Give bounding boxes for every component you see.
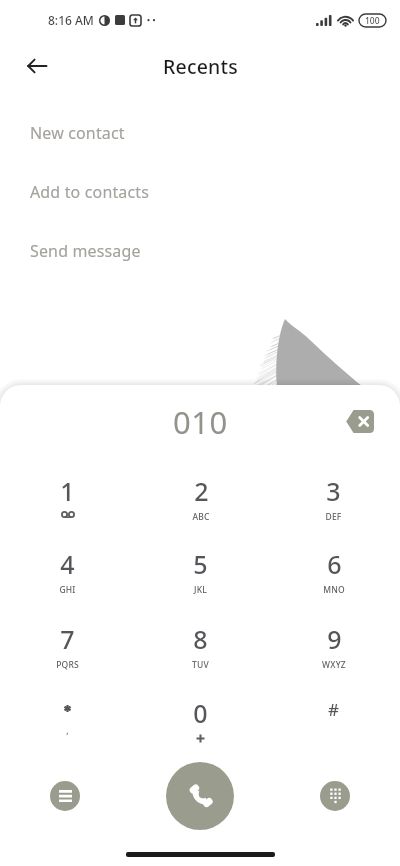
button[interactable]: 2 (134, 474, 267, 528)
button[interactable]: 8 (134, 622, 267, 676)
staticText: ABC (192, 511, 210, 523)
staticText: 6 (327, 547, 342, 581)
staticText: 2 (194, 474, 209, 508)
button[interactable]: Back (17, 46, 57, 86)
button[interactable]: 0 (134, 696, 267, 750)
staticText: MNO (323, 584, 345, 596)
staticText: PQRS (56, 659, 79, 671)
button[interactable]: 6 (267, 547, 400, 601)
staticText: 5 (193, 547, 208, 581)
button[interactable]: 4 (0, 547, 134, 601)
staticText: 3 (326, 474, 341, 508)
staticText: GHI (59, 584, 76, 596)
staticText: 1 (60, 474, 75, 508)
staticText: TUV (192, 659, 209, 671)
staticText: 7 (60, 622, 75, 656)
staticText: New contact (30, 122, 125, 144)
button[interactable]: , (0, 696, 134, 750)
staticText: 0 (193, 696, 208, 730)
staticText: 9 (327, 622, 342, 656)
staticText: Recents (163, 53, 238, 80)
button[interactable]: # (267, 696, 400, 750)
staticText: 100 (365, 15, 380, 27)
button[interactable]: Add to contacts (0, 163, 400, 221)
button[interactable]: 1 (0, 474, 134, 528)
button[interactable]: 5 (134, 547, 267, 601)
staticText: WXYZ (322, 659, 346, 671)
staticText: JKL (194, 584, 207, 596)
button[interactable]: Send message (0, 222, 400, 280)
button[interactable]: Call (166, 762, 234, 830)
staticText: DEF (325, 511, 342, 523)
button[interactable]: Dialpad (320, 781, 350, 811)
button[interactable]: 3 (267, 474, 400, 528)
staticText: , (66, 725, 69, 737)
staticText: 4 (60, 547, 75, 581)
staticText: 8:16 AM (48, 12, 94, 28)
staticText: Send message (30, 240, 141, 262)
button[interactable]: Keypad options (50, 781, 80, 811)
staticText: 8 (193, 622, 208, 656)
button[interactable]: Backspace (338, 400, 381, 443)
staticText: # (328, 698, 339, 721)
button[interactable]: 9 (267, 622, 400, 676)
staticText: 010 (173, 401, 228, 443)
button[interactable]: New contact (0, 104, 400, 162)
button[interactable]: 7 (0, 622, 134, 676)
staticText: Add to contacts (30, 181, 150, 203)
